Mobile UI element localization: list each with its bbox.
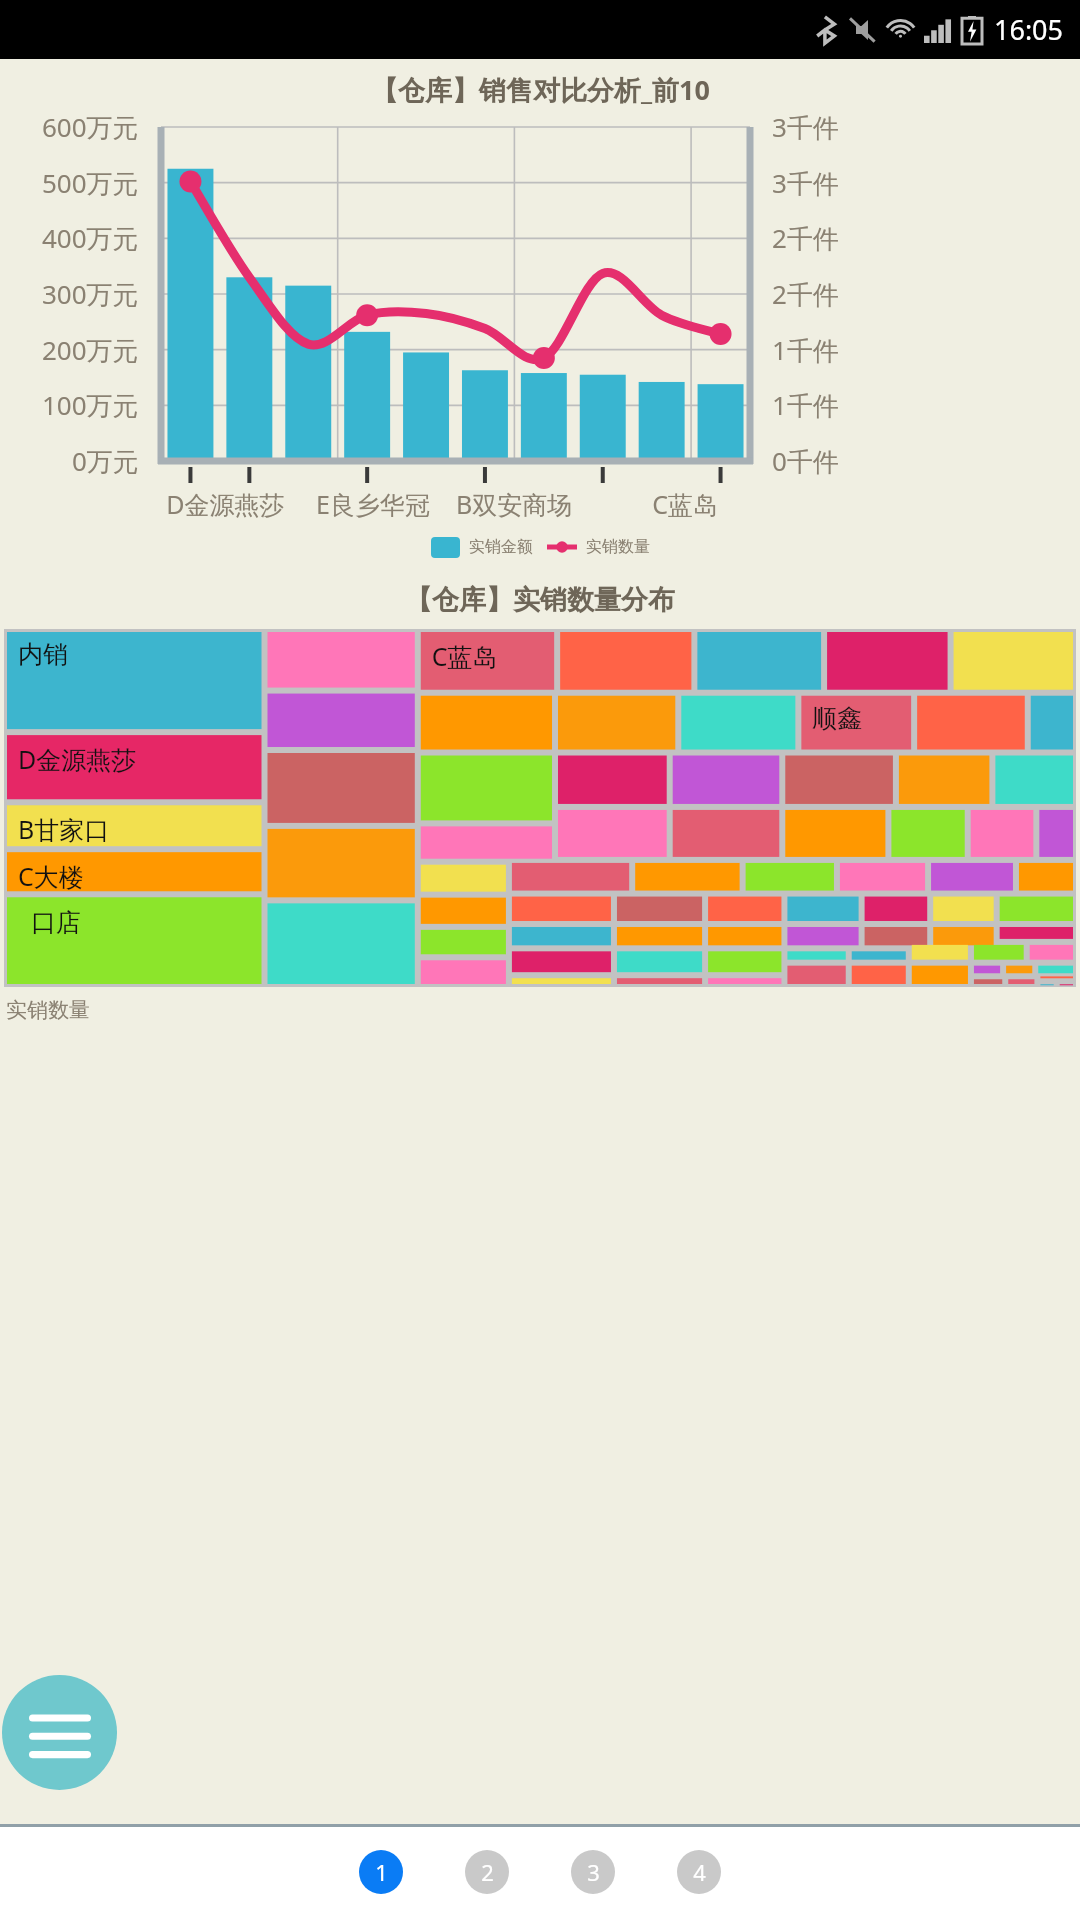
button[interactable]: 3: [571, 1850, 615, 1894]
button[interactable]: 2: [465, 1850, 509, 1894]
staticText: 16:05: [994, 11, 1064, 48]
staticText: 1: [375, 1857, 388, 1887]
staticText: 2: [481, 1857, 494, 1887]
staticText: 实销金额: [469, 537, 533, 557]
staticText: 3: [587, 1857, 600, 1887]
staticText: 实销数量: [586, 537, 650, 557]
staticText: 4: [693, 1857, 706, 1887]
button[interactable]: 4: [677, 1850, 721, 1894]
staticText: 【仓库】实销数量分布: [405, 583, 675, 617]
staticText: 实销数量: [6, 997, 90, 1023]
button[interactable]: Menu: [2, 1675, 117, 1790]
staticText: 【仓库】销售对比分析_前10: [371, 71, 710, 108]
button[interactable]: 1: [359, 1850, 403, 1894]
